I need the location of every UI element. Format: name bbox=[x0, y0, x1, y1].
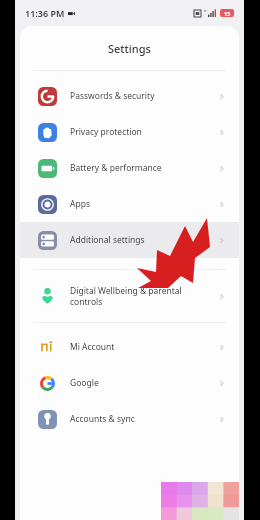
button[interactable]: Digital Wellbeing & parental controls bbox=[20, 278, 239, 314]
staticText: Mi Account bbox=[70, 341, 217, 353]
button[interactable]: Battery & performance bbox=[20, 150, 239, 186]
staticText: Privacy protection bbox=[70, 126, 217, 138]
button[interactable]: Google bbox=[20, 365, 239, 401]
button[interactable]: Apps bbox=[20, 186, 239, 222]
staticText: 15 bbox=[224, 10, 231, 17]
staticText: Google bbox=[70, 377, 217, 389]
button[interactable]: Passwords & security bbox=[20, 78, 239, 114]
staticText: Battery & performance bbox=[70, 162, 217, 174]
staticText: Additional settings bbox=[70, 234, 217, 246]
other: Pointer arrow bbox=[15, 0, 244, 520]
staticText: Digital Wellbeing & parental controls bbox=[70, 285, 217, 307]
button[interactable]: Mi Account bbox=[20, 329, 239, 365]
staticText: Passwords & security bbox=[70, 90, 217, 102]
staticText: 11:36 PM bbox=[25, 7, 65, 19]
button[interactable]: Accounts & sync bbox=[20, 401, 239, 437]
staticText: Apps bbox=[70, 198, 217, 210]
staticText: Accounts & sync bbox=[70, 413, 217, 425]
button[interactable]: Privacy protection bbox=[20, 114, 239, 150]
staticText: ” bbox=[204, 8, 207, 18]
staticText: Settings bbox=[108, 41, 151, 56]
button[interactable]: Additional settings bbox=[20, 222, 239, 258]
